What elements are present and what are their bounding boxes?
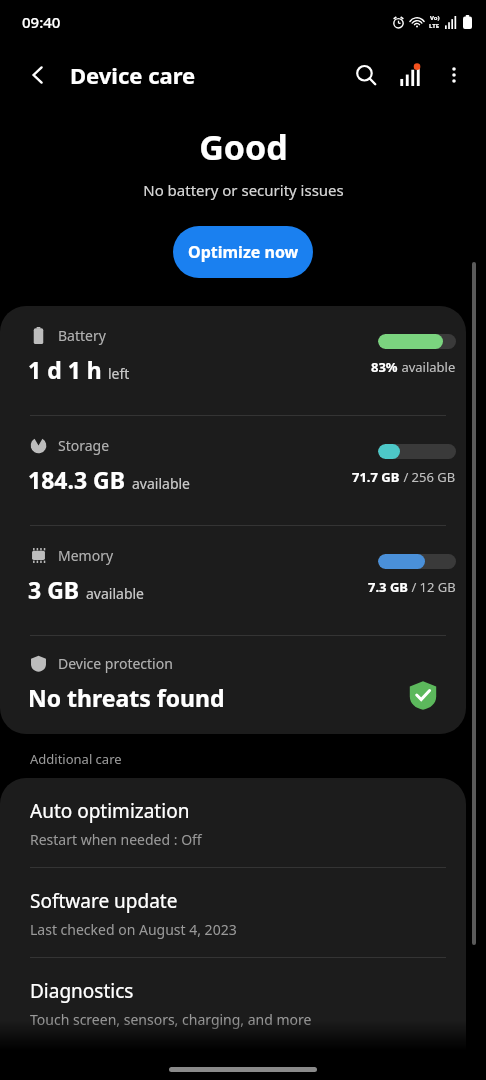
button[interactable]: Device protection [0,636,466,734]
staticText: Additional care [30,750,122,768]
staticText: 09:40 [22,12,61,32]
staticText: 7.3 GB [368,578,408,596]
staticText: Diagnostics [30,978,134,1004]
staticText: 1 d 1 h [28,354,102,385]
button[interactable]: Diagnostics [0,958,466,1047]
button[interactable]: Back [16,53,60,97]
button[interactable]: Search [344,53,388,97]
staticText: Good [199,124,288,170]
staticText: Battery [58,326,106,345]
staticText: available [398,358,456,376]
staticText: 71.7 GB [352,468,400,486]
staticText: Device care [70,60,196,90]
staticText: Restart when needed : Off [30,830,202,849]
button[interactable]: Storage [0,416,466,526]
staticText: available [86,584,145,603]
staticText: available [132,474,191,493]
staticText: left [108,364,130,383]
button[interactable]: Usage statistics [388,53,432,97]
staticText: / 12 GB [408,578,456,596]
staticText: 83% [371,358,398,376]
staticText: No battery or security issues [143,180,344,200]
staticText: Touch screen, sensors, charging, and mor… [30,1010,312,1029]
button[interactable]: Software update [0,868,466,958]
staticText: Auto optimization [30,798,190,824]
staticText: Vo) [430,14,440,22]
staticText: Last checked on August 4, 2023 [30,920,237,939]
staticText: Storage [58,436,110,455]
staticText: / 256 GB [400,468,456,486]
staticText: LTE [429,22,440,30]
staticText: 184.3 GB [28,464,126,495]
button[interactable]: More options [432,53,476,97]
staticText: 3 GB [28,574,80,605]
staticText: Optimize now [188,241,299,263]
staticText: Memory [58,546,114,565]
button[interactable]: Battery [0,306,466,416]
button[interactable]: Auto optimization [0,778,466,868]
staticText: Software update [30,888,178,914]
button[interactable]: Memory [0,526,466,636]
button[interactable]: Optimize now [173,226,313,278]
staticText: No threats found [28,682,225,713]
staticText: Device protection [58,654,173,673]
